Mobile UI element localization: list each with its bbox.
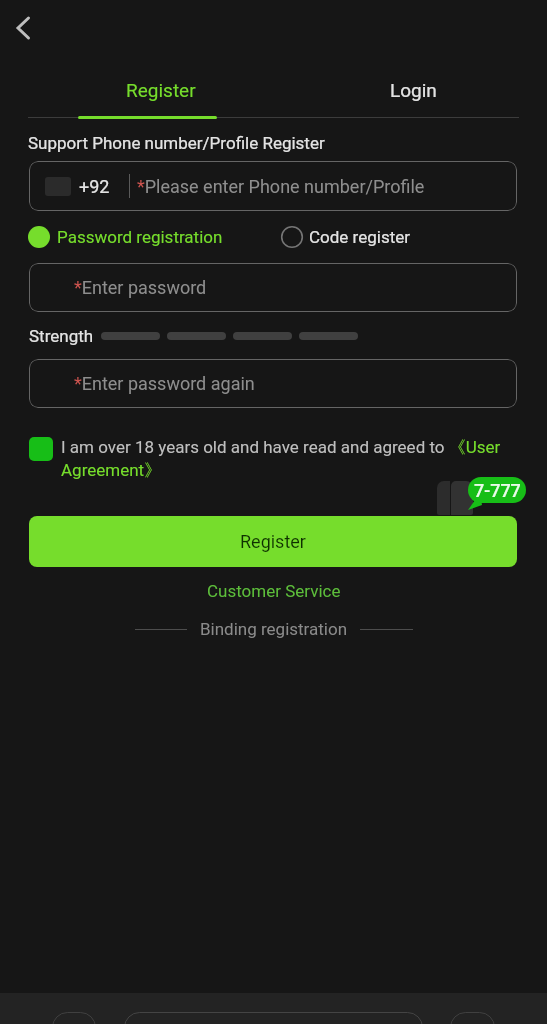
staticText: Binding registration [200,619,348,639]
staticText: Password registration [57,227,223,247]
staticText: Code register [309,227,410,247]
button[interactable]: Code register [281,226,410,248]
staticText: +92 [79,176,110,197]
button[interactable]: +92 [29,161,517,211]
staticText: Register [126,79,196,101]
staticText: Support Phone number/Profile Register [28,133,325,153]
button[interactable]: Promotion badge 7-777 [466,477,526,511]
staticText: Strength [29,326,94,346]
button[interactable]: Register [40,67,282,113]
staticText: *Enter password again [74,373,255,394]
staticText: Register [240,531,306,552]
staticText: *Please enter Phone number/Profile [137,176,425,197]
button[interactable]: *Enter password [29,263,517,312]
staticText: Login [390,79,437,101]
staticText: Customer Service [207,581,341,601]
staticText: *Enter password [74,277,207,298]
button[interactable]: Password registration [28,226,223,248]
button[interactable]: Register [29,516,517,567]
staticText: 7-777 [474,480,521,501]
button[interactable]: *Enter password again [29,359,517,408]
button[interactable]: I agree checkbox [29,437,53,461]
button[interactable]: Login [292,67,534,113]
staticText: I am over 18 years old and have read and… [61,437,521,481]
button[interactable]: Back [2,6,46,50]
button[interactable]: Customer Service [191,576,357,606]
